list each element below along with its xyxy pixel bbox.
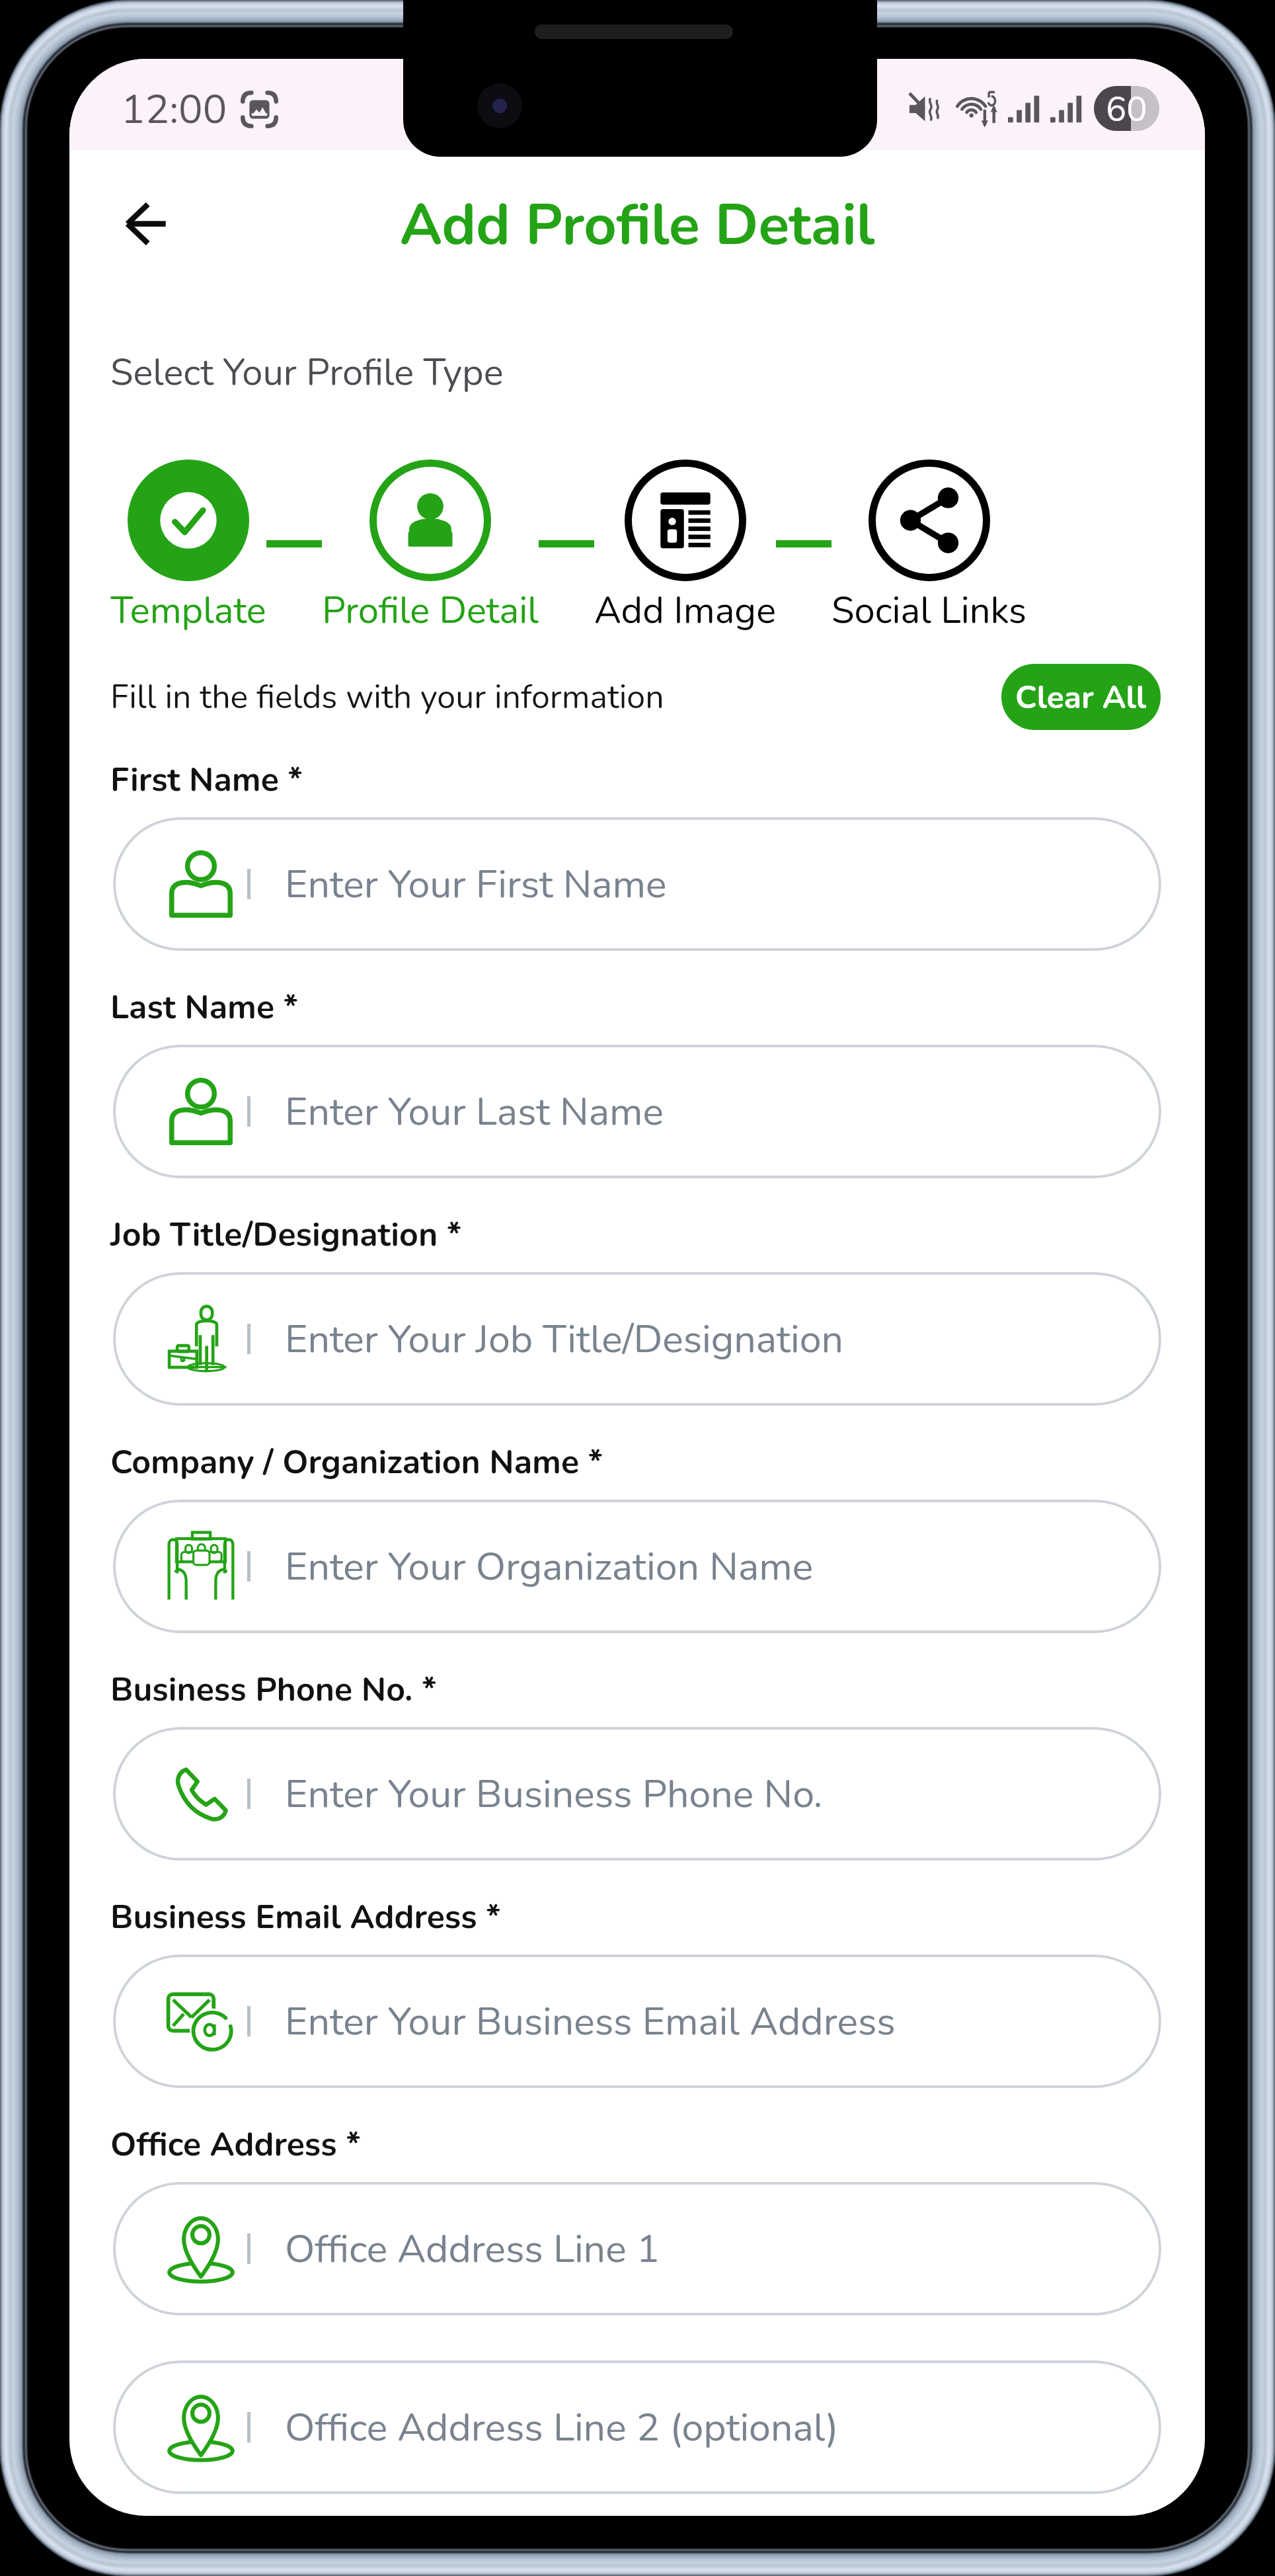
staticText: Enter Your Business Email Address	[285, 1995, 896, 2048]
staticText: Business Email Address *	[110, 1894, 501, 1939]
button[interactable]: Social Links	[831, 460, 1026, 635]
staticText: Template	[110, 585, 266, 635]
staticText: Last Name *	[110, 985, 299, 1029]
staticText: Office Address *	[110, 2122, 361, 2167]
staticText: Enter Your Business Phone No.	[285, 1767, 823, 1820]
button[interactable]: Add Image	[594, 460, 776, 635]
staticText: Add Profile Detail	[400, 186, 875, 264]
button[interactable]: Profile Detail	[322, 460, 539, 635]
button[interactable]: Office Address Line 1	[113, 2182, 1161, 2315]
staticText: Enter Your Organization Name	[285, 1540, 814, 1593]
button[interactable]: Office Address Line 2 (optional)	[113, 2360, 1161, 2494]
button[interactable]: Back	[102, 181, 188, 266]
staticText: Enter Your First Name	[285, 858, 667, 910]
staticText: 12:00	[121, 82, 227, 137]
staticText: Enter Your Job Title/Designation	[285, 1312, 844, 1365]
staticText: Business Phone No. *	[110, 1667, 437, 1712]
staticText: Office Address Line 1	[285, 2222, 660, 2275]
button[interactable]: Clear All	[1001, 664, 1161, 730]
button[interactable]: Enter Your Last Name	[113, 1045, 1161, 1178]
staticText: First Name *	[110, 757, 303, 802]
staticText: Job Title/Designation *	[110, 1212, 462, 1257]
staticText: 60	[1106, 86, 1147, 131]
staticText: Add Image	[594, 585, 776, 635]
button[interactable]: Enter Your Business Email Address	[113, 1954, 1161, 2088]
button[interactable]: Enter Your Job Title/Designation	[113, 1272, 1161, 1406]
button[interactable]: Enter Your Business Phone No.	[113, 1727, 1161, 1861]
button[interactable]: Enter Your First Name	[113, 817, 1161, 951]
staticText: Office Address Line 2 (optional)	[285, 2401, 839, 2454]
staticText: Fill in the fields with your information	[110, 674, 664, 719]
staticText: Profile Detail	[322, 585, 539, 635]
staticText: Company / Organization Name *	[110, 1439, 603, 1484]
button[interactable]: Enter Your Organization Name	[113, 1500, 1161, 1633]
staticText: Enter Your Last Name	[285, 1085, 664, 1138]
staticText: Social Links	[831, 585, 1026, 635]
staticText: Select Your Profile Type	[110, 347, 504, 397]
staticText: Clear All	[1015, 676, 1147, 719]
button[interactable]: Template	[110, 460, 266, 635]
